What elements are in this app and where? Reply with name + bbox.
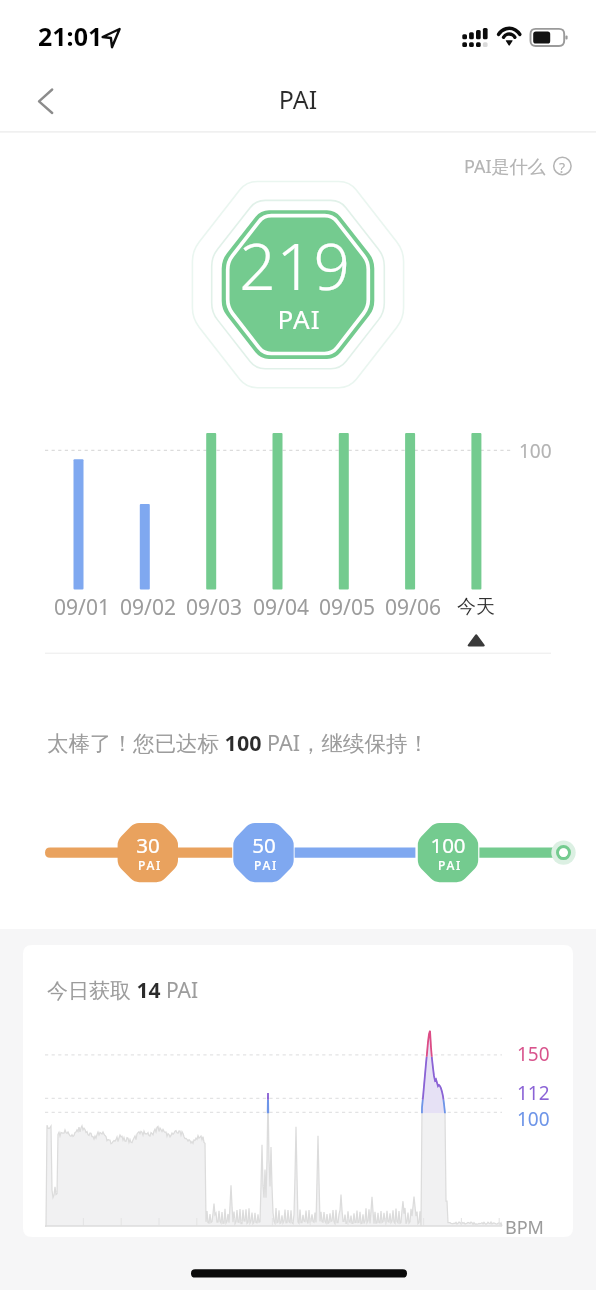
staticText: PAI是什么 — [464, 154, 546, 179]
staticText: 09/06 — [368, 593, 458, 622]
button[interactable]: PAI是什么 — [456, 148, 580, 184]
staticText: 100 — [519, 438, 552, 464]
staticText: PAI — [110, 857, 190, 873]
staticText: PAI — [226, 857, 306, 873]
staticText: 09/03 — [169, 593, 259, 622]
staticText: PAI — [178, 82, 418, 116]
staticText: 21:01 — [38, 19, 103, 53]
staticText: ? — [542, 158, 582, 177]
staticText: 09/04 — [236, 593, 326, 622]
staticText: 150 — [517, 1041, 550, 1067]
staticText: 100 — [408, 831, 488, 859]
staticText: 09/02 — [103, 593, 193, 622]
staticText: 今日获取 14 PAI — [47, 976, 199, 1005]
button[interactable]: 今日获取 14 PAI — [23, 945, 573, 1237]
staticText: 30 — [108, 831, 188, 859]
staticText: BPM — [505, 1215, 544, 1240]
staticText: 100 — [517, 1106, 550, 1132]
staticText: 太棒了！您已达标 100 PAI，继续保持！ — [47, 728, 430, 757]
staticText: 今天 — [431, 595, 521, 619]
staticText: 50 — [224, 831, 304, 859]
staticText: 09/05 — [302, 593, 392, 622]
staticText: 09/01 — [37, 593, 127, 622]
staticText: PAI — [199, 301, 399, 336]
staticText: PAI — [410, 857, 490, 873]
staticText: 219 — [145, 222, 445, 309]
button[interactable]: Back — [20, 79, 82, 123]
staticText: 112 — [517, 1080, 550, 1106]
